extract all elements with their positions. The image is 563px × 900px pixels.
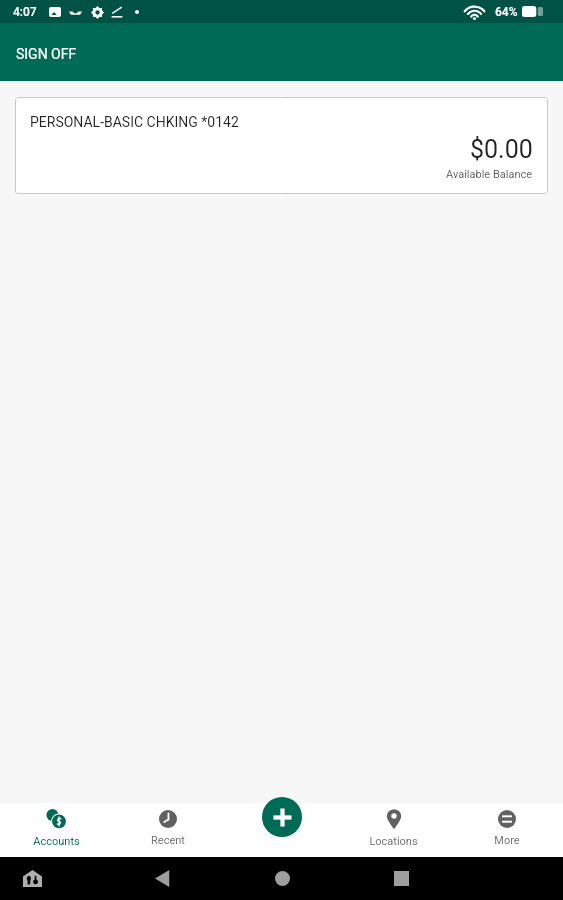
button[interactable]: Switch input method [23, 870, 42, 887]
button[interactable]: SIGN OFF [0, 34, 93, 70]
staticText: SIGN OFF [16, 46, 77, 62]
staticText: Recent [151, 834, 185, 847]
staticText: $0.00 [470, 135, 533, 164]
staticText: 64% [495, 5, 518, 19]
button[interactable]: Locations [337, 801, 450, 855]
button[interactable]: More [450, 801, 563, 855]
staticText: 4:07 [13, 5, 37, 19]
staticText: Locations [369, 835, 418, 848]
staticText: More [494, 834, 520, 847]
button[interactable]: Recent [112, 801, 224, 855]
button[interactable]: Accounts [0, 801, 112, 855]
staticText: Accounts [33, 835, 80, 848]
button[interactable]: Home [275, 871, 290, 886]
button[interactable]: Back [155, 870, 170, 887]
button[interactable]: Add [262, 797, 302, 837]
staticText: PERSONAL-BASIC CHKING *0142 [30, 114, 239, 130]
staticText: Available Balance [446, 168, 533, 181]
button[interactable]: PERSONAL-BASIC CHKING *0142 [15, 97, 548, 194]
